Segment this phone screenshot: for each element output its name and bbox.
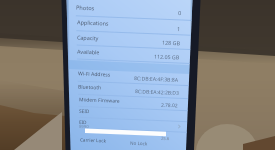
staticText: 2.78.02 [161, 102, 178, 109]
staticText: 112.05 GB [154, 52, 180, 60]
button[interactable]: Modem Firmware [79, 97, 120, 104]
staticText: No Lock [130, 140, 148, 146]
button[interactable]: 8990 [79, 124, 89, 130]
staticText: 0 [178, 9, 182, 17]
staticText: Applications [77, 18, 109, 27]
staticText: 8C:DB:EA:42:2B:D3 [135, 88, 179, 97]
button[interactable]: Carrier Lock [80, 137, 106, 143]
staticText: 8990 [79, 124, 89, 130]
staticText: Available [77, 47, 100, 55]
button[interactable]: EID [79, 119, 87, 125]
staticText: 25.6 [161, 136, 170, 142]
button[interactable]: SEID [79, 108, 90, 115]
staticText: Capacity [77, 34, 99, 41]
button[interactable]: 25.6 [161, 136, 170, 142]
staticText: Wi-Fi Address [78, 70, 111, 79]
button[interactable]: Photos [76, 4, 95, 12]
button[interactable]: Bluetooth [78, 84, 102, 91]
staticText: Modem Firmware [79, 96, 120, 105]
staticText: Photos [76, 4, 95, 12]
button[interactable]: Available [77, 48, 100, 55]
staticText: 1 [177, 25, 181, 32]
staticText: Bluetooth [78, 83, 102, 91]
staticText: 8C:DB:EA:4F:3B:8A [134, 75, 179, 84]
button[interactable]: Wi-Fi Address [78, 71, 111, 78]
staticText: EID [79, 119, 87, 125]
button[interactable]: Capacity [77, 34, 99, 41]
button[interactable]: Applications [77, 19, 109, 26]
staticText: 128 GB [162, 39, 181, 46]
staticText: Carrier Lock [80, 136, 106, 143]
staticText: SEID [79, 108, 90, 115]
